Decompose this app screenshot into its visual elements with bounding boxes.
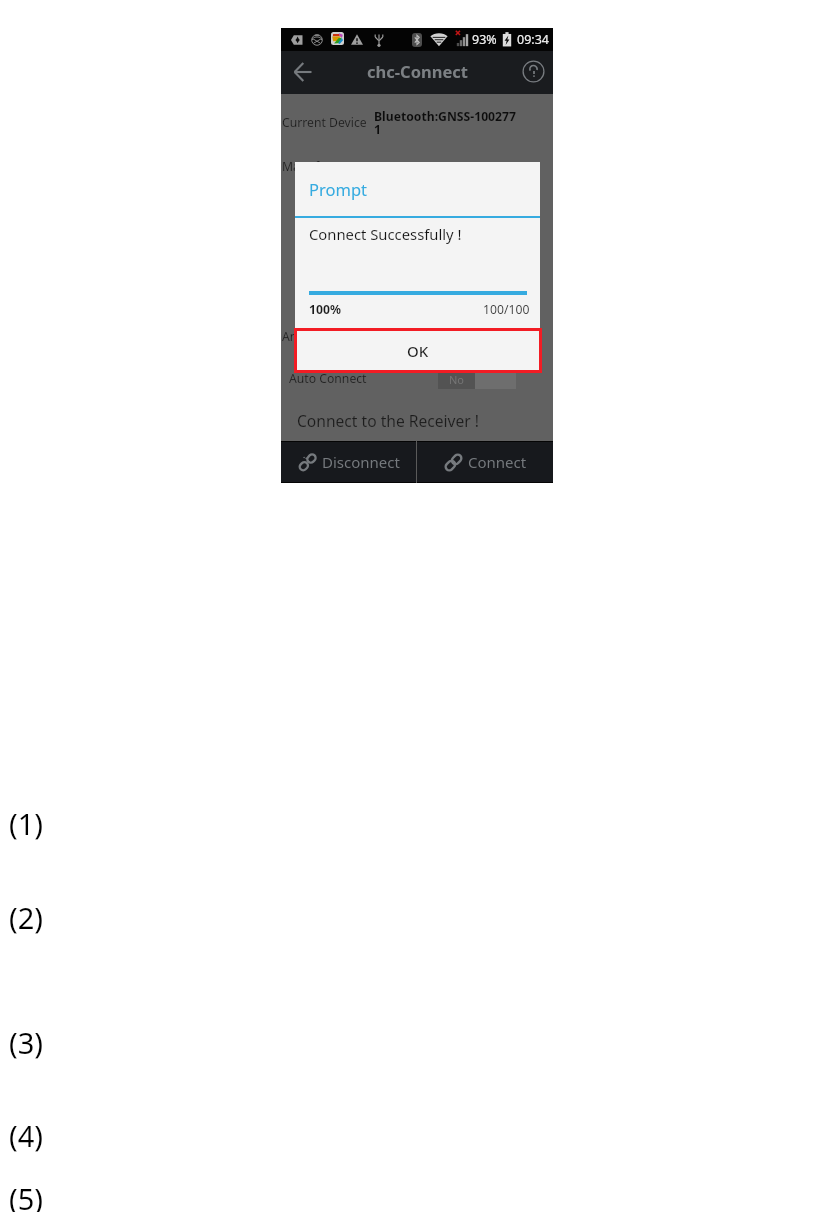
staticText: Current Device [282,114,367,131]
staticText: Bluetooth:GNSS-100277 1 [374,108,516,138]
staticText: Prompt [309,178,367,200]
staticText: OK [407,341,429,361]
button[interactable]: Connect [417,442,553,482]
staticText: (1) [9,804,43,843]
staticText: (2) [9,898,43,937]
staticText: 100% [309,301,341,318]
button[interactable]: Help [520,58,544,82]
staticText: Antenna Height [282,328,373,345]
staticText: 93% [472,31,497,48]
staticText: No [449,372,465,387]
staticText: chc-Connect [367,60,468,82]
staticText: 09:34 [517,31,549,48]
staticText: (5) [9,1179,43,1212]
staticText: 100/100 [483,301,530,318]
button[interactable]: Disconnect [281,442,416,482]
button[interactable]: OK [297,331,539,370]
staticText: (4) [9,1116,43,1155]
staticText: (3) [9,1023,43,1062]
button[interactable]: Back [289,58,315,84]
staticText: Auto Connect [289,370,367,387]
staticText: Manufacturer [282,158,361,175]
staticText: Connect [468,452,527,472]
staticText: Connect Successfully ! [309,224,462,244]
staticText: Connect to the Receiver ! [297,410,479,431]
staticText: CHC [374,158,399,175]
button[interactable]: No [438,370,516,389]
staticText: Disconnect [322,452,400,472]
